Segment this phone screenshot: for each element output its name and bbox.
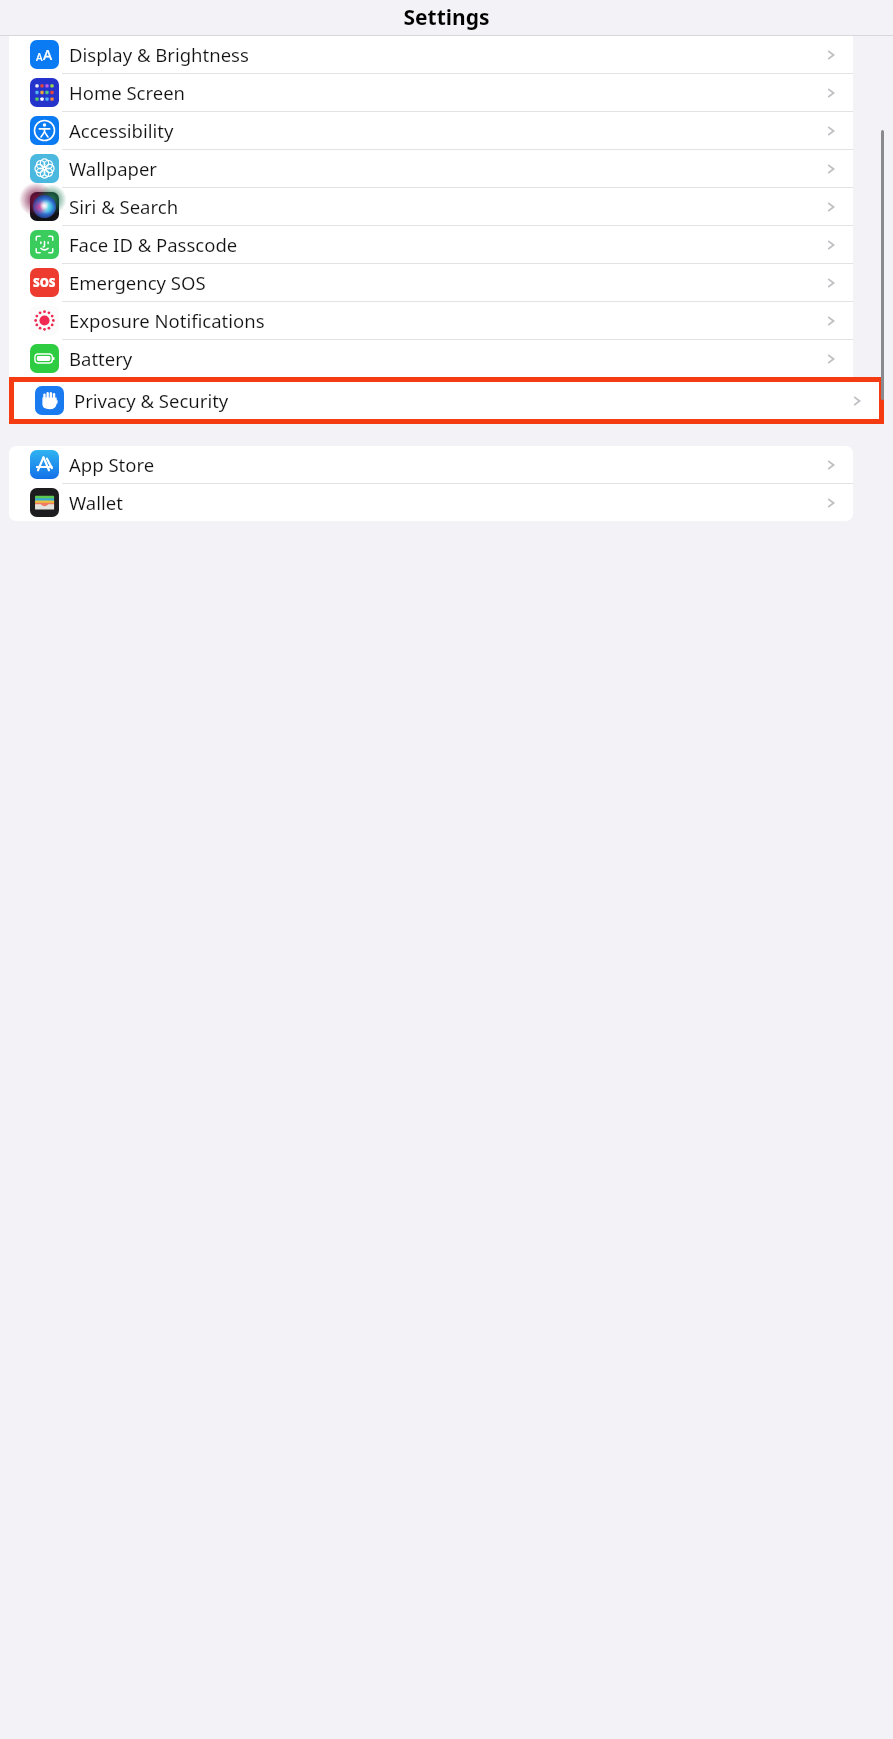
staticText: Exposure Notifications xyxy=(69,308,824,333)
button[interactable]: App Store xyxy=(9,446,853,483)
staticText: Display & Brightness xyxy=(69,42,824,67)
button[interactable]: Wallpaper xyxy=(9,150,853,187)
staticText: Accessibility xyxy=(69,118,824,143)
staticText: Face ID & Passcode xyxy=(69,232,824,257)
staticText: Siri & Search xyxy=(69,194,824,219)
staticText: Home Screen xyxy=(69,80,824,105)
button[interactable]: Privacy & Security xyxy=(14,382,879,419)
staticText: Settings xyxy=(403,3,490,32)
button[interactable]: SOS xyxy=(9,264,853,301)
button[interactable]: Home Screen xyxy=(9,74,853,111)
staticText: Privacy & Security xyxy=(74,388,850,413)
staticText: A xyxy=(36,50,43,64)
staticText: SOS xyxy=(33,275,56,291)
staticText: Battery xyxy=(69,346,824,371)
button[interactable]: Exposure Notifications xyxy=(9,302,853,339)
button[interactable]: Wallet xyxy=(9,484,853,521)
staticText: App Store xyxy=(69,452,824,477)
staticText: A xyxy=(43,45,53,64)
staticText: Wallpaper xyxy=(69,156,824,181)
button[interactable]: Face ID & Passcode xyxy=(9,226,853,263)
button[interactable]: A xyxy=(9,36,853,73)
staticText: Wallet xyxy=(69,490,824,515)
staticText: Emergency SOS xyxy=(69,270,824,295)
button[interactable]: Battery xyxy=(9,340,853,377)
button[interactable]: Siri & Search xyxy=(9,188,853,225)
button[interactable]: Accessibility xyxy=(9,112,853,149)
